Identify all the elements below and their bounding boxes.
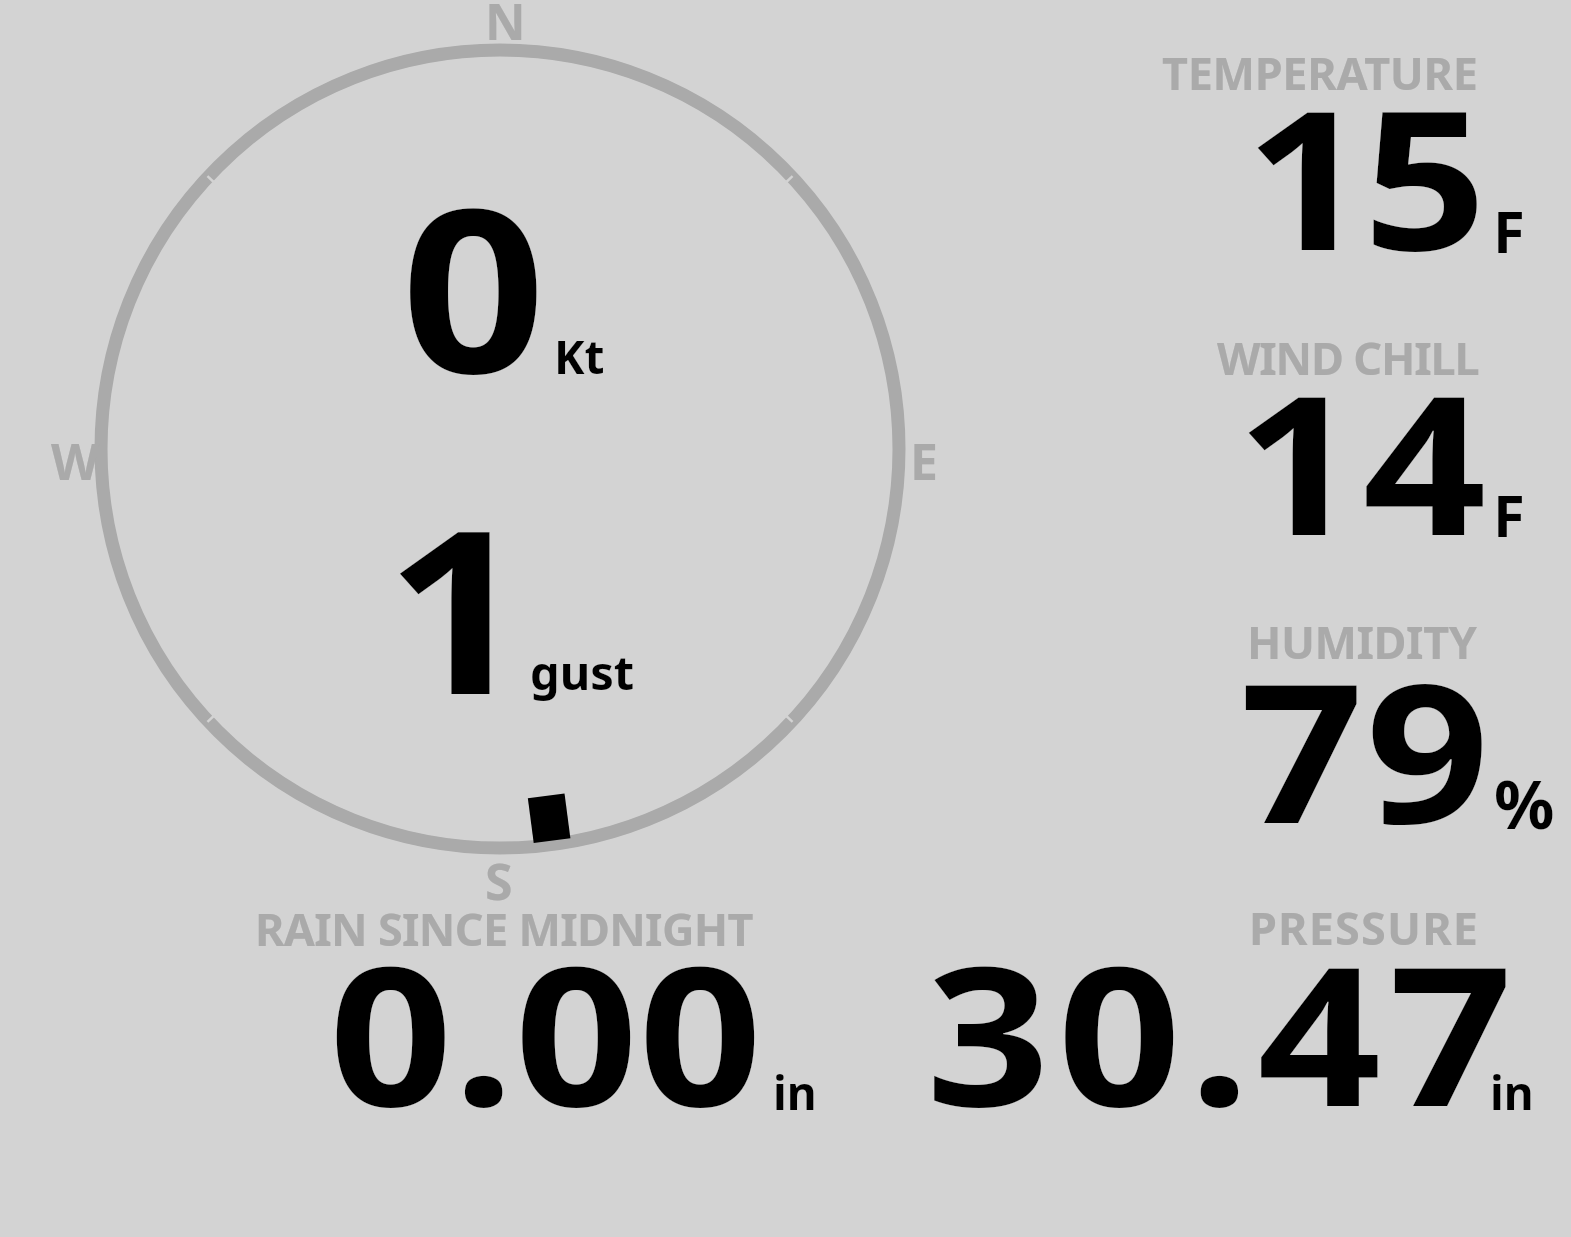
- button[interactable]: Wind chill 14 degrees Fahrenheit: [1150, 325, 1565, 555]
- staticText: Kt: [554, 325, 605, 388]
- staticText: 14: [1236, 329, 1490, 592]
- staticText: N: [485, 0, 526, 55]
- staticText: 0.00: [329, 900, 764, 1163]
- staticText: 15: [1245, 44, 1481, 307]
- staticText: RAIN SINCE MIDNIGHT: [255, 898, 753, 959]
- staticText: %: [1494, 757, 1555, 848]
- staticText: E: [910, 427, 938, 495]
- staticText: 1: [385, 452, 531, 760]
- staticText: gust: [530, 640, 635, 704]
- staticText: in: [1490, 1061, 1534, 1124]
- staticText: 30.47: [926, 900, 1521, 1163]
- staticText: in: [773, 1061, 817, 1124]
- button[interactable]: Temperature 15 degrees Fahrenheit: [1150, 40, 1565, 270]
- staticText: F: [1493, 191, 1525, 270]
- staticText: TEMPERATURE: [1162, 42, 1478, 103]
- staticText: W: [51, 427, 100, 495]
- staticText: HUMIDITY: [1247, 611, 1477, 672]
- button[interactable]: Wind direction compass, 0 knots, gusting…: [90, 40, 910, 860]
- staticText: F: [1493, 475, 1525, 554]
- button[interactable]: Humidity 79 percent: [1150, 608, 1565, 838]
- staticText: 79: [1240, 617, 1492, 880]
- staticText: PRESSURE: [1249, 897, 1480, 958]
- staticText: S: [485, 847, 513, 915]
- button[interactable]: Pressure 30.47 inches: [900, 895, 1560, 1120]
- staticText: WIND CHILL: [1217, 327, 1479, 388]
- staticText: 0: [401, 131, 547, 439]
- button[interactable]: Rain since midnight 0.00 inches: [250, 895, 830, 1120]
